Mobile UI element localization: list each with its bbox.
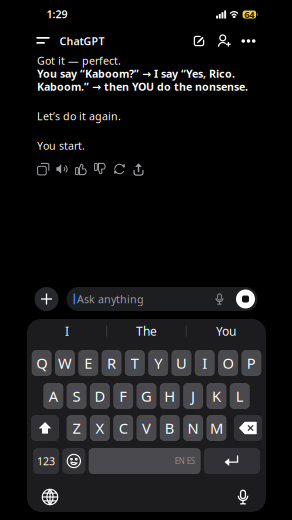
staticText: N: [188, 418, 199, 438]
button[interactable]: I: [195, 350, 215, 376]
button[interactable]: Copy: [37, 162, 50, 175]
staticText: Let’s do it again.: [37, 109, 121, 123]
button[interactable]: N: [183, 415, 203, 441]
staticText: T: [131, 353, 139, 373]
staticText: You say “Kaboom?” → I say “Yes, Rico.: [37, 66, 235, 81]
button[interactable]: D: [90, 383, 110, 409]
button[interactable]: M: [206, 415, 226, 441]
staticText: You: [216, 323, 236, 339]
button[interactable]: Read aloud: [56, 162, 69, 175]
button[interactable]: Ask anything: [66, 287, 257, 311]
button[interactable]: Next keyboard: [37, 485, 63, 509]
button[interactable]: Share chat: [214, 30, 236, 52]
staticText: U: [176, 353, 187, 373]
staticText: Ask anything: [77, 292, 144, 306]
staticText: D: [94, 386, 105, 406]
staticText: R: [107, 353, 116, 373]
button[interactable]: Q: [32, 350, 52, 376]
button[interactable]: C: [113, 415, 133, 441]
button[interactable]: Attach: [34, 287, 58, 311]
staticText: L: [236, 386, 244, 406]
button[interactable]: You: [187, 320, 265, 341]
staticText: W: [58, 353, 72, 373]
staticText: The: [136, 323, 157, 339]
staticText: ChatGPT: [59, 34, 104, 48]
button[interactable]: F: [113, 383, 133, 409]
staticText: J: [191, 386, 195, 406]
button[interactable]: The: [107, 320, 186, 341]
button[interactable]: Good response: [75, 162, 88, 175]
button[interactable]: 123: [33, 448, 59, 474]
button[interactable]: W: [55, 350, 75, 376]
staticText: M: [210, 418, 223, 438]
staticText: 64: [244, 8, 254, 21]
button[interactable]: V: [136, 415, 156, 441]
button[interactable]: O: [218, 350, 238, 376]
button[interactable]: Delete: [234, 415, 262, 441]
button[interactable]: X: [90, 415, 110, 441]
button[interactable]: Try again: [113, 162, 126, 175]
staticText: A: [49, 386, 58, 406]
button[interactable]: P: [241, 350, 261, 376]
button[interactable]: K: [206, 383, 226, 409]
staticText: B: [165, 418, 175, 438]
staticText: V: [142, 418, 151, 438]
button[interactable]: New chat: [188, 30, 210, 52]
button[interactable]: R: [102, 350, 122, 376]
staticText: You start.: [37, 138, 85, 153]
staticText: C: [119, 418, 128, 438]
button[interactable]: B: [160, 415, 180, 441]
staticText: Got it — perfect.: [37, 53, 121, 68]
button[interactable]: Z: [67, 415, 87, 441]
button[interactable]: More options: [237, 30, 259, 52]
staticText: H: [164, 386, 175, 406]
staticText: G: [141, 386, 152, 406]
staticText: O: [223, 353, 234, 373]
staticText: Kaboom.” → then YOU do the nonsense.: [37, 79, 248, 94]
button[interactable]: G: [136, 383, 156, 409]
staticText: F: [119, 386, 127, 406]
button[interactable]: S: [67, 383, 87, 409]
button[interactable]: A: [43, 383, 63, 409]
button[interactable]: Shift: [31, 415, 59, 441]
staticText: 1:29: [46, 7, 67, 21]
button[interactable]: T: [125, 350, 145, 376]
button[interactable]: Share: [132, 162, 145, 175]
button[interactable]: L: [230, 383, 250, 409]
button[interactable]: H: [160, 383, 180, 409]
button[interactable]: Dictate: [230, 485, 256, 509]
button[interactable]: Return: [204, 448, 260, 474]
button[interactable]: Bad response: [94, 162, 107, 175]
button[interactable]: I: [28, 320, 106, 341]
staticText: I: [202, 353, 207, 373]
button[interactable]: E: [78, 350, 98, 376]
button[interactable]: Sidebar: [32, 30, 54, 52]
staticText: S: [73, 386, 81, 406]
staticText: I: [65, 323, 69, 339]
staticText: Y: [154, 353, 162, 373]
staticText: 123: [37, 454, 55, 468]
staticText: X: [95, 418, 104, 438]
button[interactable]: J: [183, 383, 203, 409]
staticText: Q: [36, 353, 47, 373]
staticText: K: [212, 386, 221, 406]
button[interactable]: U: [171, 350, 191, 376]
staticText: E: [84, 353, 92, 373]
staticText: Z: [73, 418, 81, 438]
button[interactable]: Y: [148, 350, 168, 376]
staticText: EN ES: [175, 456, 195, 466]
staticText: P: [247, 353, 256, 373]
button[interactable]: Space: [89, 448, 201, 474]
button[interactable]: Emoji: [62, 448, 85, 474]
